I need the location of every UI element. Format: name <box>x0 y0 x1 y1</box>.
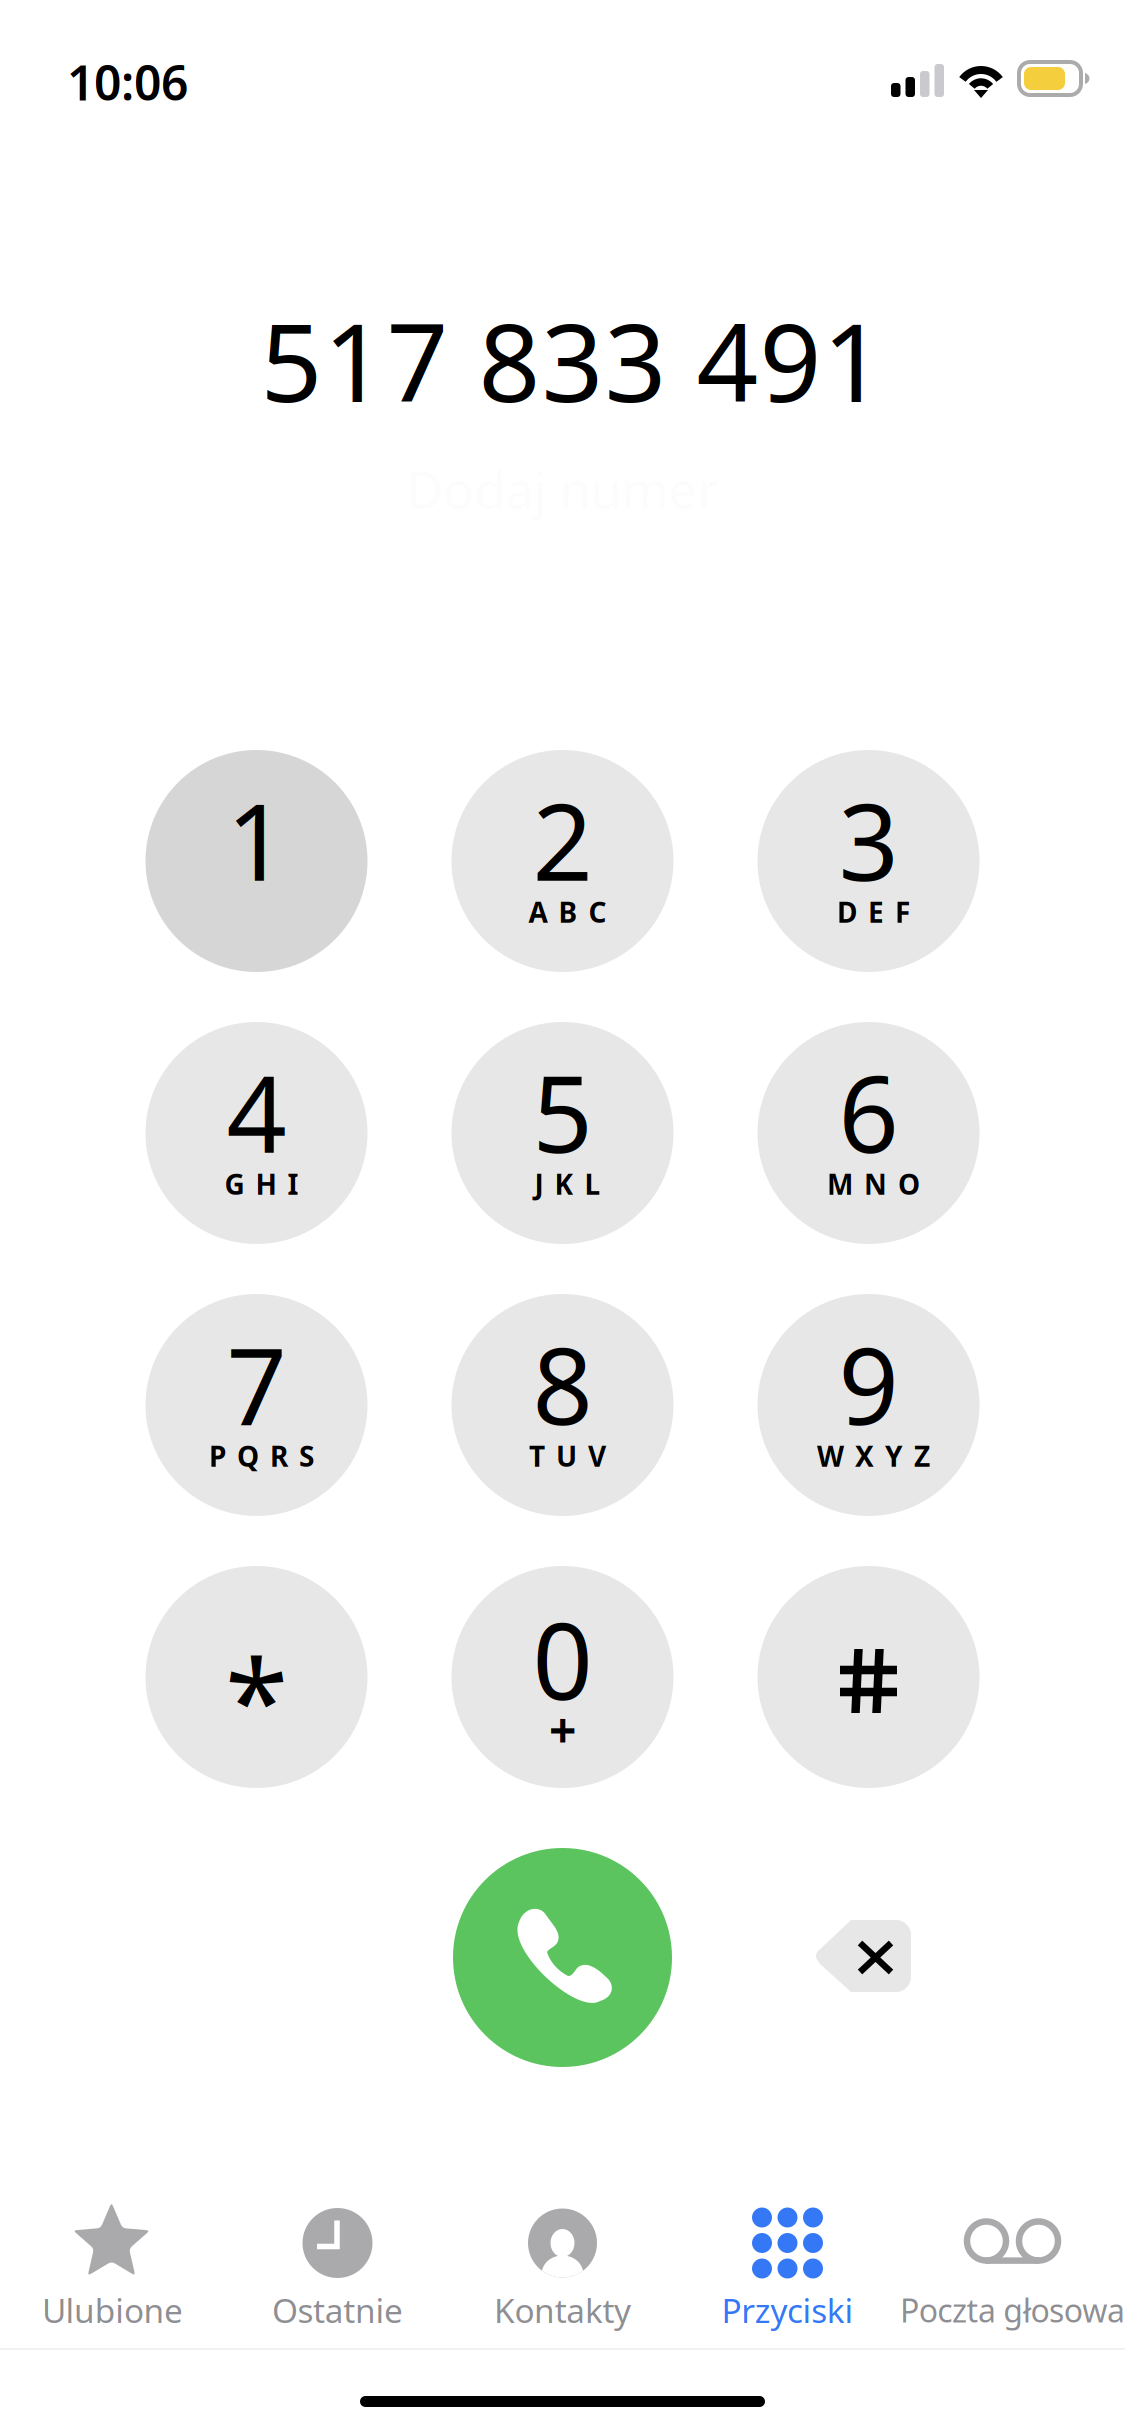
staticText: 5 <box>532 1042 592 1182</box>
staticText: 9 <box>838 1314 898 1454</box>
staticText: TUV <box>529 1437 606 1475</box>
button[interactable]: 7 <box>145 1294 367 1516</box>
staticText: Przyciski <box>722 2288 853 2332</box>
staticText: 6 <box>838 1042 898 1182</box>
button[interactable]: Ulubione <box>0 2176 225 2348</box>
staticText: 0 <box>532 1589 592 1729</box>
staticText: ABC <box>528 893 606 931</box>
button[interactable]: 3 <box>757 750 979 972</box>
button[interactable]: 4 <box>145 1022 367 1244</box>
staticText: WXYZ <box>817 1437 930 1475</box>
button[interactable]: 0 <box>451 1566 673 1788</box>
staticText: Poczta głosowa <box>900 2289 1125 2331</box>
button[interactable]: Call <box>453 1848 672 2067</box>
button[interactable]: 2 <box>451 750 673 972</box>
staticText: 3 <box>838 770 898 910</box>
staticText: 2 <box>532 770 592 910</box>
staticText: 8 <box>532 1314 592 1454</box>
button[interactable]: 1 <box>145 750 367 972</box>
staticText: + <box>549 1697 576 1761</box>
staticText: 4 <box>226 1042 286 1182</box>
staticText: PQRS <box>209 1437 314 1475</box>
staticText: GHI <box>224 1165 298 1203</box>
button[interactable]: * <box>145 1566 367 1788</box>
button[interactable]: 5 <box>451 1022 673 1244</box>
staticText: 10:06 <box>67 50 188 114</box>
staticText: MNO <box>827 1165 920 1203</box>
button[interactable]: Delete <box>813 1920 911 1992</box>
staticText: DEF <box>837 893 910 931</box>
staticText: 7 <box>226 1314 286 1454</box>
button[interactable]: Przyciski <box>675 2176 900 2348</box>
staticText: Ulubione <box>42 2288 183 2332</box>
button[interactable]: Poczta głosowa <box>900 2176 1125 2348</box>
button[interactable]: Kontakty <box>450 2176 675 2348</box>
staticText: Kontakty <box>494 2288 631 2332</box>
staticText: 1 <box>226 770 286 910</box>
staticText: 517 833 491 <box>260 288 884 432</box>
staticText: JKL <box>534 1165 600 1203</box>
staticText: Ostatnie <box>272 2288 403 2332</box>
staticText: * <box>225 1623 288 1775</box>
button[interactable] <box>757 1566 979 1788</box>
button[interactable]: Ostatnie <box>225 2176 450 2348</box>
button[interactable]: 9 <box>757 1294 979 1516</box>
button[interactable]: 6 <box>757 1022 979 1244</box>
button[interactable]: 8 <box>451 1294 673 1516</box>
